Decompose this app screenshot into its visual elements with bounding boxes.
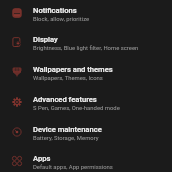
staticText: Block, allow, prioritize	[33, 16, 90, 23]
staticText: Wallpapers and themes	[33, 65, 113, 74]
button[interactable]: Notifications	[0, 0, 172, 28]
button[interactable]: Display	[0, 27, 172, 57]
staticText: Device maintenance	[33, 125, 102, 134]
staticText: Brightness, Blue light filter, Home scre…	[33, 45, 139, 52]
staticText: Display	[33, 35, 58, 44]
button[interactable]: Wallpapers and themes	[0, 57, 172, 87]
staticText: Wallpapers, Themes, Icons	[33, 75, 103, 82]
button[interactable]: Apps	[0, 146, 172, 172]
staticText: Battery, Storage, Memory	[33, 135, 99, 142]
staticText: Apps	[33, 154, 51, 163]
button[interactable]: Device maintenance	[0, 117, 172, 147]
staticText: S Pen, Games, One-handed mode	[33, 105, 120, 112]
staticText: Default apps, App permissions	[33, 164, 113, 171]
button[interactable]: Advanced features	[0, 87, 172, 117]
staticText: Notifications	[33, 6, 77, 15]
staticText: Advanced features	[33, 95, 97, 104]
